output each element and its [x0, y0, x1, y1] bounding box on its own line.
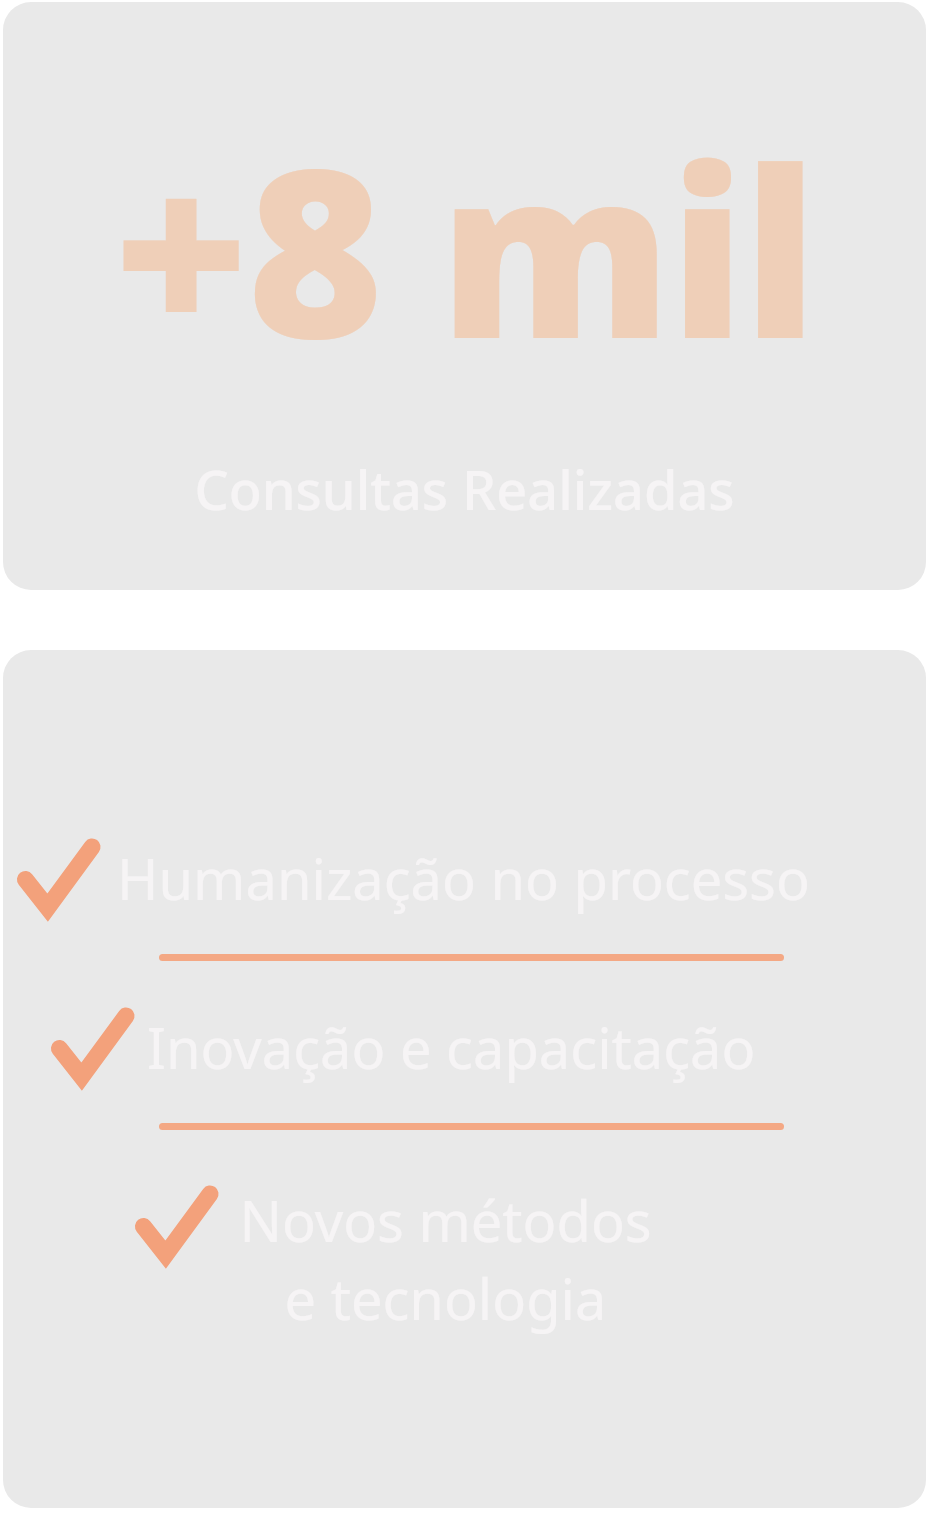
- other: Marcado: [21, 841, 95, 915]
- staticText: Novos métodos e tecnologia: [239, 1182, 652, 1337]
- button[interactable]: Marcado: [55, 1009, 908, 1085]
- staticText: Consultas Realizadas: [194, 452, 735, 526]
- button[interactable]: Marcado: [21, 840, 908, 916]
- button[interactable]: Marcado: [3, 650, 926, 1508]
- button[interactable]: +8 mil: [3, 2, 926, 590]
- other: Marcado: [139, 1188, 213, 1262]
- staticText: Inovação e capacitação: [147, 1009, 756, 1085]
- button[interactable]: Marcado: [139, 1182, 908, 1337]
- staticText: Humanização no processo: [117, 840, 810, 916]
- staticText: +8 mil: [113, 90, 816, 406]
- other: Marcado: [55, 1010, 129, 1084]
